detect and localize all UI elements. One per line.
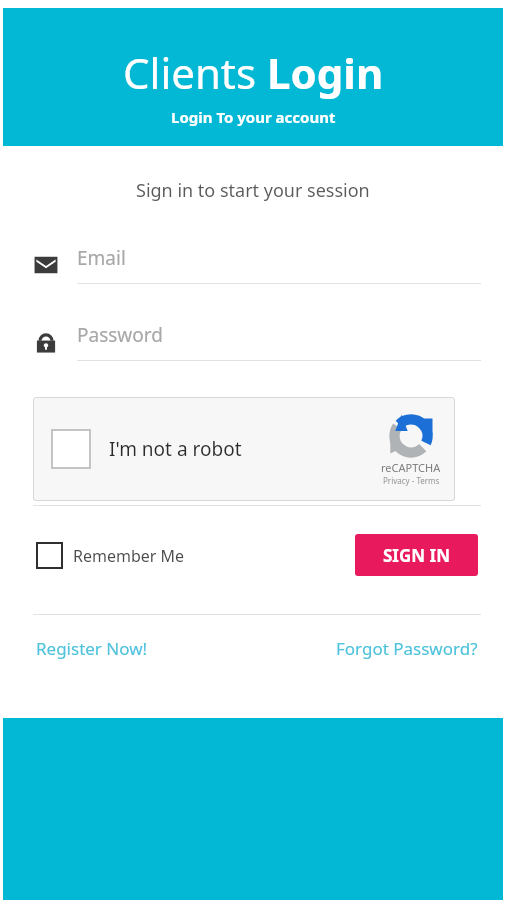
staticText: I'm not a robot: [109, 436, 242, 462]
other: Password: [33, 330, 59, 354]
button[interactable]: SIGN IN: [355, 534, 478, 576]
staticText: Sign in to start your session: [136, 178, 370, 203]
button[interactable]: Forgot Password?: [336, 637, 478, 660]
staticText: Login To your account: [171, 107, 336, 127]
other: Email: [33, 253, 59, 277]
staticText: SIGN IN: [383, 544, 450, 567]
staticText: Password: [77, 322, 163, 348]
button[interactable]: Password: [33, 322, 481, 361]
staticText: Remember Me: [73, 545, 185, 567]
staticText: Register Now!: [36, 637, 148, 660]
staticText: Email: [77, 245, 126, 271]
staticText: Forgot Password?: [336, 637, 478, 660]
button[interactable]: Register Now!: [36, 637, 148, 660]
button[interactable]: Remember Me: [36, 542, 185, 569]
staticText: reCAPTCHA: [381, 460, 441, 475]
staticText: Clients Login: [123, 44, 384, 101]
button[interactable]: Email: [33, 245, 481, 284]
button[interactable]: I'm not a robot: [33, 397, 455, 501]
staticText: Privacy - Terms: [383, 475, 440, 486]
